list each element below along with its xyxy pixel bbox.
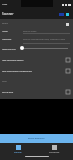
staticText: Connected	[49, 151, 60, 154]
staticText: Only show proper configuration	[2, 70, 32, 73]
staticText: Scanner	[14, 151, 22, 154]
staticText: Hide unnamed devices	[2, 59, 24, 62]
staticText: Advanced	[2, 38, 12, 41]
staticText: Enable Bluetooth	[28, 137, 45, 140]
staticText: Filters	[2, 22, 8, 25]
staticText: Filter by Manufacturer Data, Company Nam…	[23, 38, 65, 41]
staticText: Name	[2, 30, 8, 33]
button[interactable]: Toggle	[66, 58, 70, 62]
staticText: 12:34	[2, 3, 8, 6]
button[interactable]: Toggle	[66, 90, 70, 94]
staticText: Scanner	[2, 12, 14, 16]
staticText: Minimum RSSI	[2, 48, 16, 51]
staticText: Filter by name	[23, 30, 37, 33]
button[interactable]: Toggle	[66, 69, 70, 73]
staticText: Sort by RSSI	[2, 91, 14, 94]
staticText: Type	[2, 80, 7, 83]
button[interactable]: Connected	[36, 143, 73, 160]
button[interactable]: Scanner	[0, 143, 36, 160]
